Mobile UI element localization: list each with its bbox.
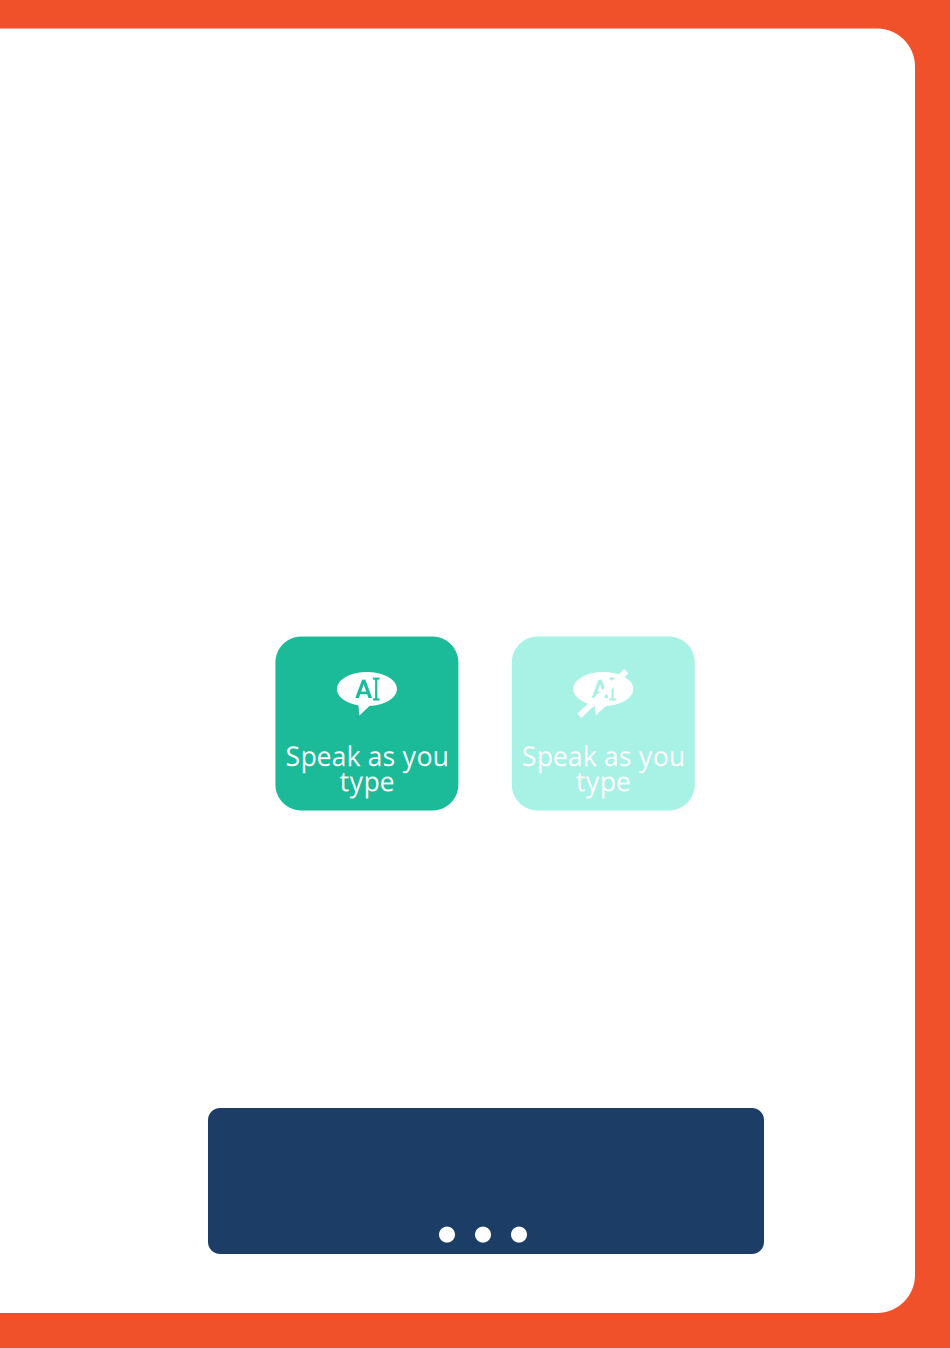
staticText: type xyxy=(576,763,631,799)
staticText: type xyxy=(339,763,394,799)
button[interactable]: Page 3 xyxy=(511,1227,527,1243)
button[interactable]: Speak as you xyxy=(512,636,695,810)
staticText: Speak as you xyxy=(285,738,448,773)
button[interactable]: Page 1 xyxy=(439,1227,455,1243)
button[interactable]: Page 2 xyxy=(475,1227,491,1243)
button[interactable]: Speak as you xyxy=(275,636,458,810)
staticText: Speak as you xyxy=(522,738,685,773)
